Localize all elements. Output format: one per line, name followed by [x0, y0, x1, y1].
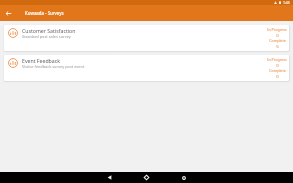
staticText: Customer Satisfaction [22, 27, 76, 34]
staticText: 0 [276, 32, 279, 38]
staticText: Visitor feedback survey post event [22, 64, 85, 69]
button[interactable]: Recent apps [165, 172, 202, 183]
staticText: Complete [269, 38, 286, 43]
staticText: 0 [276, 62, 279, 68]
button[interactable]: Customer Satisfaction [4, 25, 289, 51]
staticText: Standard post sales survey [22, 34, 71, 39]
staticText: 5 [276, 43, 279, 49]
staticText: 1:45 [283, 0, 290, 5]
button[interactable]: Event Feedback [4, 55, 289, 81]
button[interactable]: Back [91, 172, 128, 183]
staticText: In Progress [267, 27, 287, 32]
button[interactable]: Back [0, 5, 16, 21]
staticText: In Progress [267, 57, 287, 62]
staticText: Event Feedback [22, 57, 60, 64]
staticText: Kuwaada - Surveys [25, 10, 64, 16]
staticText: 0 [276, 73, 279, 79]
staticText: Complete [269, 68, 286, 73]
button[interactable]: Home [128, 172, 165, 183]
